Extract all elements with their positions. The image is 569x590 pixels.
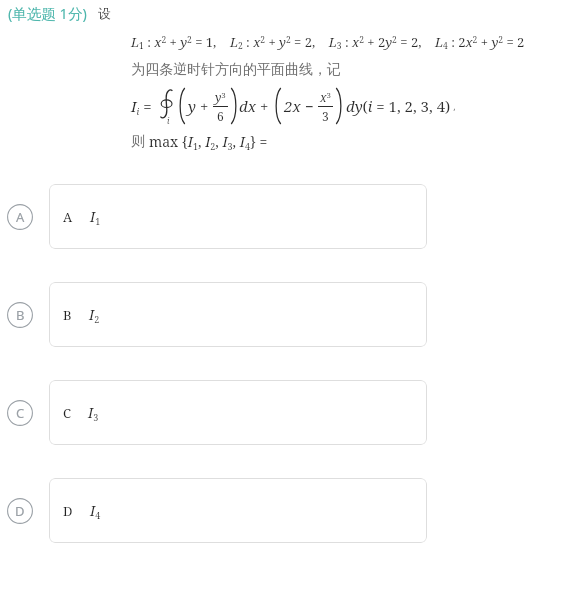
staticText: I2 — [89, 305, 100, 325]
staticText: 2x — [284, 96, 301, 116]
button[interactable]: Option B — [0, 282, 569, 347]
button[interactable]: D — [49, 478, 427, 543]
other: Option D — [7, 498, 33, 524]
staticText: D — [15, 502, 25, 520]
staticText: 3 — [322, 108, 329, 124]
staticText: y3 — [215, 89, 226, 105]
staticText: dy(i = 1, 2, 3, 4) — [346, 96, 451, 116]
staticText: C — [16, 404, 25, 422]
staticText: 则 — [131, 133, 145, 151]
button[interactable]: Option D — [0, 478, 569, 543]
staticText: I3 — [88, 403, 99, 423]
staticText: (单选题 1分) — [8, 3, 87, 23]
staticText: D — [63, 502, 73, 520]
staticText: 6 — [217, 108, 224, 124]
button[interactable]: Option A — [0, 184, 569, 249]
button[interactable]: A — [49, 184, 427, 249]
staticText: y — [188, 96, 196, 116]
other: Option A — [7, 204, 33, 230]
staticText: B — [16, 306, 25, 324]
staticText: + — [196, 96, 213, 116]
other: Option C — [7, 400, 33, 426]
button[interactable]: C — [49, 380, 427, 445]
staticText: − — [301, 96, 318, 116]
staticText: A — [63, 208, 73, 226]
staticText: max {I1, I2, I3, I4} = — [149, 132, 272, 152]
staticText: 设 — [98, 5, 111, 21]
button[interactable]: B — [49, 282, 427, 347]
staticText: x3 — [320, 89, 331, 105]
staticText: C — [63, 404, 71, 422]
staticText: I4 — [90, 501, 101, 521]
staticText: I1 — [90, 207, 101, 227]
staticText: A — [16, 208, 25, 226]
staticText: i — [167, 115, 170, 126]
staticText: L1 : x2 + y2 = 1, L2 : x2 + y2 = 2, L3 :… — [131, 33, 525, 52]
staticText: B — [63, 306, 72, 324]
staticText: , — [451, 100, 456, 112]
staticText: + — [256, 96, 273, 116]
staticText: 为四条逆时针方向的平面曲线，记 — [131, 61, 341, 79]
other: Option B — [7, 302, 33, 328]
staticText: Ii = — [131, 96, 156, 117]
button[interactable]: Option C — [0, 380, 569, 445]
staticText: dx — [239, 96, 256, 116]
